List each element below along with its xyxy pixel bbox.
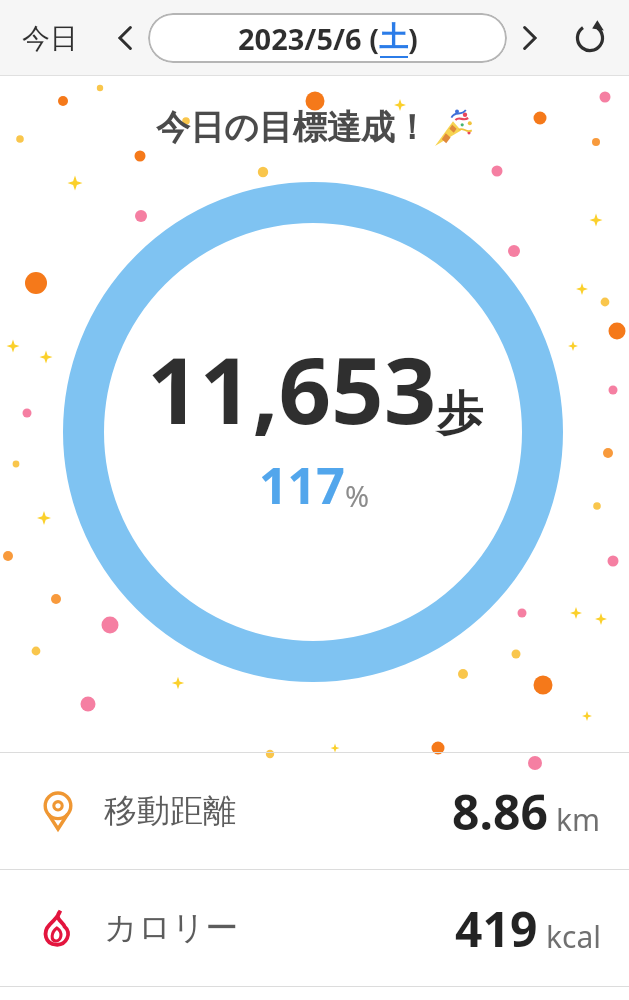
- staticText: km: [556, 799, 601, 840]
- staticText: 2023/5/6 (: [238, 19, 379, 58]
- staticText: %: [345, 476, 370, 515]
- staticText: カロリー: [104, 907, 239, 949]
- staticText: 8.86: [452, 779, 548, 844]
- staticText: 土: [379, 19, 408, 56]
- staticText: 117: [259, 451, 345, 519]
- staticText: 移動距離: [104, 790, 236, 832]
- button[interactable]: 移動距離: [0, 753, 629, 869]
- staticText: 今日の目標達成！: [156, 106, 429, 149]
- button[interactable]: カロリー: [0, 870, 629, 986]
- staticText: 歩: [437, 385, 483, 443]
- button[interactable]: 更新: [565, 13, 615, 63]
- staticText: 今日: [22, 21, 78, 56]
- button[interactable]: 前日: [102, 15, 148, 61]
- staticText: 11,653: [147, 326, 437, 451]
- button[interactable]: 翌日: [507, 15, 553, 61]
- staticText: 419: [455, 896, 538, 961]
- staticText: kcal: [546, 916, 601, 957]
- button[interactable]: 2023/5/6 (: [148, 13, 507, 63]
- button[interactable]: 今日: [18, 11, 82, 66]
- staticText: ): [408, 19, 418, 58]
